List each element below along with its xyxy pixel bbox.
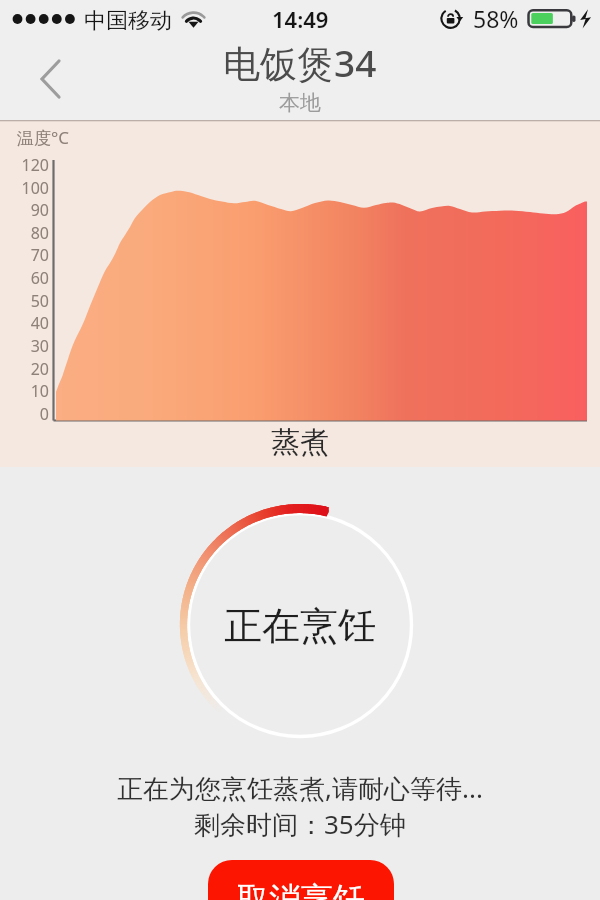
staticText: 正在为您烹饪蒸煮,请耐心等待... xyxy=(117,770,483,806)
staticText: 0 xyxy=(39,403,49,425)
staticText: 蒸煮 xyxy=(271,424,329,461)
staticText: 10 xyxy=(30,380,49,402)
button[interactable]: Back xyxy=(18,44,74,112)
staticText: 正在烹饪 xyxy=(224,602,376,650)
staticText: 中国移动 xyxy=(84,7,172,35)
staticText: 120 xyxy=(21,154,49,176)
staticText: 58% xyxy=(473,3,519,34)
staticText: 剩余时间：35分钟 xyxy=(194,806,406,842)
staticText: 90 xyxy=(30,199,49,221)
button[interactable]: 取消烹饪 xyxy=(208,860,394,900)
staticText: 100 xyxy=(21,177,49,199)
staticText: 70 xyxy=(30,244,49,266)
staticText: 温度°C xyxy=(17,126,70,149)
staticText: 14:49 xyxy=(272,4,329,34)
staticText: 电饭煲34 xyxy=(223,37,377,88)
staticText: 80 xyxy=(30,222,49,244)
staticText: 40 xyxy=(30,312,49,334)
staticText: 取消烹饪 xyxy=(237,879,365,900)
staticText: 60 xyxy=(30,267,49,289)
staticText: 50 xyxy=(30,290,49,312)
staticText: 本地 xyxy=(279,90,321,116)
staticText: 30 xyxy=(30,335,49,357)
staticText: 20 xyxy=(30,358,49,380)
